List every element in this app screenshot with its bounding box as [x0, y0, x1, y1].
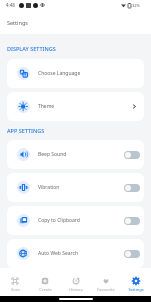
staticText: History [69, 287, 83, 292]
staticText: Copy to Clipboard [38, 217, 80, 224]
staticText: Create [39, 287, 52, 292]
staticText: Vibration [38, 184, 60, 191]
button[interactable]: Create [30, 268, 60, 296]
button[interactable]: Theme [7, 92, 144, 121]
button[interactable]: Auto Web Search [7, 239, 144, 268]
button[interactable]: Copy to Clipboard [7, 206, 144, 235]
staticText: Settings [128, 287, 144, 292]
staticText: Scan [11, 287, 20, 292]
staticText: 4:48 [6, 2, 15, 8]
staticText: Choose Language [38, 70, 81, 77]
button[interactable]: History [61, 268, 91, 296]
staticText: Beep Sound [38, 151, 67, 158]
staticText: Favourite [97, 287, 115, 292]
button[interactable]: Choose Language [7, 59, 144, 88]
button[interactable]: Scan [0, 268, 30, 296]
staticText: Auto Web Search [38, 250, 78, 257]
staticText: DISPLAY SETTINGS [7, 45, 56, 52]
button[interactable]: Favourite [91, 268, 121, 296]
staticText: 32% [132, 3, 140, 8]
button[interactable]: Beep Sound [7, 140, 144, 169]
staticText: Theme [38, 103, 55, 110]
staticText: APP SETTINGS [7, 127, 45, 134]
button[interactable]: Settings [121, 268, 151, 296]
button[interactable]: Vibration [7, 173, 144, 202]
staticText: Settings [7, 19, 28, 26]
